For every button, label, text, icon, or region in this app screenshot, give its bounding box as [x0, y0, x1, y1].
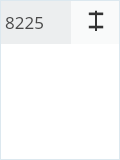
- staticText: 8225: [5, 11, 44, 34]
- button[interactable]: Adjust height: [71, 0, 120, 44]
- button[interactable]: 8225: [0, 0, 71, 44]
